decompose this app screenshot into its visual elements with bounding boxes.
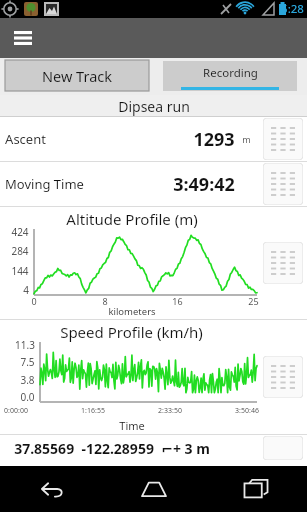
button[interactable]: New Track (5, 60, 149, 91)
staticText: 1293 (193, 127, 235, 152)
button[interactable]: Moving Time (0, 162, 307, 206)
button[interactable]: Recent apps (205, 466, 307, 512)
staticText: 3:49:42 (173, 172, 235, 197)
staticText: Altitude Profile (m) (66, 209, 198, 229)
staticText: 0 (31, 295, 37, 307)
staticText: 3:50:46 (235, 406, 259, 416)
button[interactable]: 37.85569 -122.28959 ⌐+ 3 m (0, 435, 307, 461)
staticText: 16 (172, 295, 183, 307)
button[interactable]: Open navigation menu (8, 23, 38, 53)
staticText: 284 (11, 244, 29, 258)
staticText: Time (119, 418, 145, 433)
button[interactable]: Speed Profile (km/h) (0, 320, 307, 434)
staticText: Ascent (5, 130, 46, 148)
staticText: 0:00:00 (4, 406, 28, 416)
staticText: 5:28 (281, 1, 304, 17)
button[interactable]: Reorder (263, 163, 303, 205)
staticText: kilometers (108, 305, 156, 318)
button[interactable]: Dipsea run (0, 95, 307, 117)
button[interactable]: Reorder (263, 356, 303, 398)
staticText: Recording (203, 65, 258, 81)
staticText: Moving Time (5, 175, 84, 193)
staticText: 37.85569 -122.28959 ⌐+ 3 m (14, 439, 210, 458)
staticText: m (242, 133, 251, 145)
staticText: 11.3 (15, 338, 35, 352)
staticText: Dipsea run (118, 97, 190, 116)
button[interactable]: Ascent (0, 117, 307, 161)
staticText: 7.5 (20, 355, 35, 369)
staticText: 0.0 (20, 390, 35, 404)
staticText: 4 (23, 283, 29, 297)
staticText: Speed Profile (km/h) (60, 322, 203, 342)
staticText: New Track (42, 66, 112, 86)
button[interactable]: Recording (163, 61, 297, 91)
staticText: 1:16:55 (81, 406, 105, 416)
button[interactable]: Back (0, 466, 103, 512)
staticText: 2:33:50 (158, 406, 182, 416)
staticText: 144 (11, 264, 29, 278)
staticText: 3.8 (20, 373, 35, 387)
staticText: 8 (102, 295, 108, 307)
button[interactable]: Home (103, 466, 205, 512)
staticText: 424 (11, 225, 29, 239)
button[interactable]: Altitude Profile (m) (0, 207, 307, 319)
button[interactable]: Reorder (263, 118, 303, 160)
staticText: 25 (248, 295, 259, 307)
button[interactable]: Reorder (263, 242, 303, 284)
